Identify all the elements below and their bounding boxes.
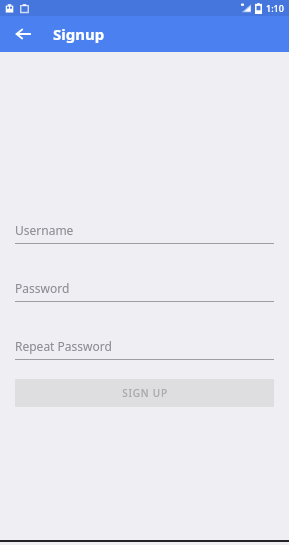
staticText: Username <box>15 222 74 238</box>
button[interactable]: Repeat Password <box>15 338 274 360</box>
button[interactable]: SIGN UP <box>15 379 274 407</box>
staticText: 1:10 <box>266 2 284 14</box>
staticText: SIGN UP <box>122 386 168 400</box>
staticText: Password <box>15 280 70 296</box>
button[interactable]: Password <box>15 280 274 302</box>
staticText: Repeat Password <box>15 338 112 354</box>
button[interactable]: Back <box>11 22 35 46</box>
staticText: Signup <box>53 24 105 44</box>
button[interactable]: Username <box>15 222 274 244</box>
